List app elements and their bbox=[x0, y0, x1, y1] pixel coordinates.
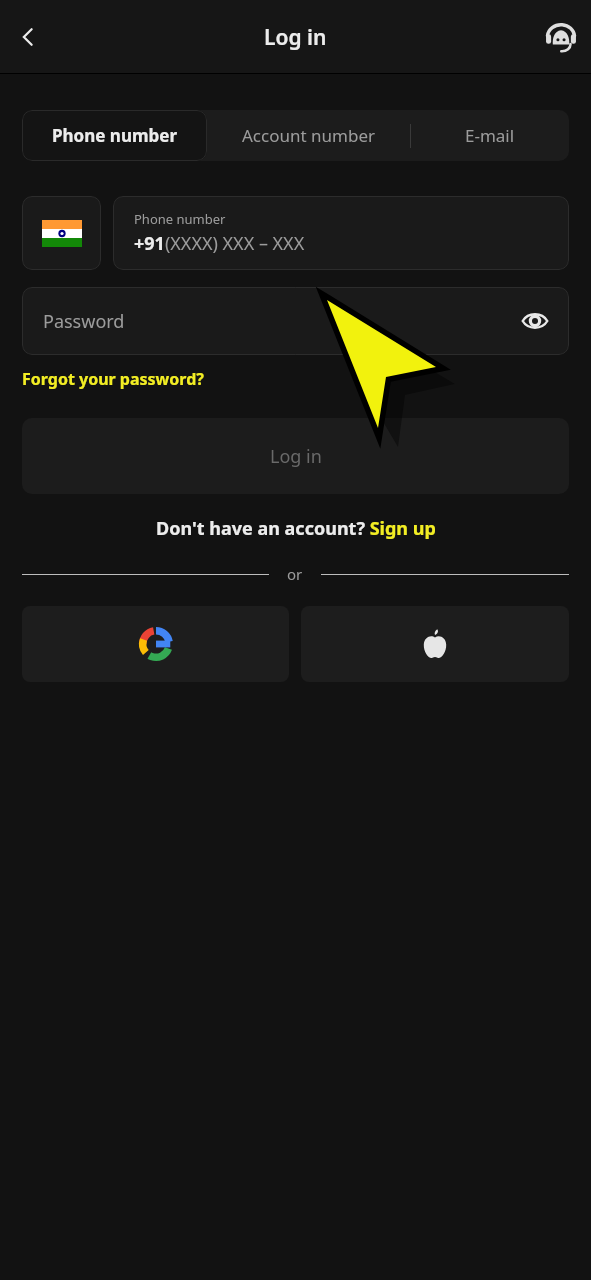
button[interactable]: Phone number bbox=[113, 196, 569, 270]
button[interactable]: Show password bbox=[515, 301, 555, 341]
button[interactable]: Select country code bbox=[22, 196, 101, 270]
button[interactable]: Don't have an account? Sign up bbox=[156, 516, 436, 541]
staticText: +91(XXXX) XXX – XXX bbox=[134, 231, 305, 256]
button[interactable]: Password bbox=[22, 287, 569, 355]
staticText: or bbox=[287, 564, 303, 584]
button[interactable]: Forgot your password? bbox=[22, 368, 204, 390]
button[interactable]: Account number bbox=[207, 110, 410, 161]
button[interactable]: E-mail bbox=[411, 110, 569, 161]
staticText: Account number bbox=[242, 124, 376, 147]
button[interactable]: Phone number bbox=[22, 110, 207, 161]
staticText: Phone number bbox=[134, 210, 226, 228]
button[interactable]: Log in bbox=[22, 418, 569, 494]
button[interactable]: Back bbox=[6, 15, 50, 59]
staticText: Log in bbox=[264, 23, 327, 52]
staticText: Log in bbox=[270, 444, 322, 469]
staticText: E-mail bbox=[465, 124, 515, 147]
staticText: Password bbox=[43, 309, 125, 334]
staticText: Phone number bbox=[52, 124, 178, 147]
button[interactable]: Continue with Apple bbox=[301, 606, 569, 682]
button[interactable]: Support bbox=[539, 15, 583, 59]
button[interactable]: Continue with Google bbox=[22, 606, 289, 682]
